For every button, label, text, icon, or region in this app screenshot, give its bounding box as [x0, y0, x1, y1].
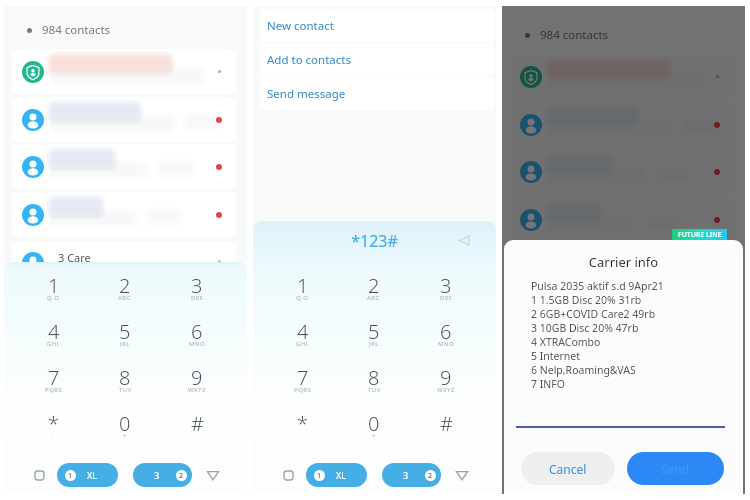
staticText: ·	[301, 432, 304, 440]
staticText: #	[440, 410, 453, 437]
staticText: 8	[119, 364, 131, 391]
button[interactable]: *	[267, 399, 338, 445]
staticText: 2	[368, 272, 380, 299]
button[interactable]: 5	[338, 307, 410, 353]
staticText: DEF	[440, 294, 453, 302]
staticText: 2	[119, 272, 131, 299]
staticText: New contact	[267, 18, 334, 34]
staticText: 7	[48, 364, 60, 391]
staticText: 2	[428, 471, 433, 481]
staticText: *123#	[253, 230, 496, 252]
staticText: 2	[179, 471, 184, 481]
staticText: 0	[119, 410, 131, 437]
button[interactable]	[510, 54, 734, 99]
button[interactable]: 3 Care	[12, 242, 236, 287]
staticText: TUV	[119, 386, 132, 394]
button[interactable]	[510, 197, 734, 242]
staticText: PQRS	[45, 386, 63, 394]
button[interactable]	[12, 49, 236, 94]
button[interactable]: 2	[89, 262, 161, 307]
button[interactable]: Add to contacts	[260, 43, 494, 76]
staticText: 1	[317, 471, 322, 481]
staticText: MNO	[189, 340, 206, 348]
button[interactable]: Send	[627, 452, 724, 485]
staticText: JKL	[120, 340, 130, 348]
staticText: Q O	[47, 294, 60, 302]
button[interactable]: 9	[410, 353, 482, 399]
button[interactable]: 0	[338, 399, 410, 445]
staticText: 9	[440, 364, 452, 391]
button[interactable]: Recent apps	[275, 462, 301, 488]
button[interactable]: 1	[57, 463, 118, 487]
button[interactable]: 9	[161, 353, 233, 399]
staticText: WXYZ	[188, 386, 206, 394]
staticText: 984 contacts	[42, 22, 111, 38]
button[interactable]	[12, 192, 236, 237]
button[interactable]: #	[161, 399, 233, 445]
staticText: +	[123, 432, 127, 440]
button[interactable]: 1	[306, 463, 367, 487]
staticText: 9	[191, 364, 203, 391]
staticText: *	[48, 410, 60, 437]
staticText: 0	[368, 410, 380, 437]
staticText: MNO	[438, 340, 455, 348]
button[interactable]: #	[410, 399, 482, 445]
staticText: Carrier info	[504, 253, 743, 271]
staticText: +	[372, 432, 376, 440]
button[interactable]: 4	[18, 307, 89, 353]
button[interactable]: 3	[133, 463, 192, 487]
staticText: ABC	[367, 294, 381, 302]
staticText: FUTURE LINE	[678, 230, 722, 240]
button[interactable]: 3	[382, 463, 441, 487]
staticText: 4	[297, 318, 309, 345]
button[interactable]	[12, 144, 236, 189]
button[interactable]: 3	[410, 261, 482, 307]
button[interactable]: 0	[89, 399, 161, 445]
staticText: GHI	[296, 340, 309, 348]
button[interactable]: 6	[410, 307, 482, 353]
button[interactable]: Cancel	[521, 452, 615, 485]
button[interactable]	[510, 102, 734, 147]
staticText: 6	[440, 318, 452, 345]
button[interactable]: Back	[200, 462, 226, 488]
staticText: 5 Internet	[531, 349, 581, 363]
button[interactable]: 1	[18, 262, 89, 307]
staticText: 3	[403, 469, 409, 481]
button[interactable]: Backspace	[455, 231, 473, 249]
staticText: ABC	[118, 294, 132, 302]
staticText: 2 6GB+COVID Care2 49rb	[531, 307, 656, 321]
button[interactable]: 8	[338, 353, 410, 399]
staticText: PQRS	[294, 386, 312, 394]
button[interactable]: Send message	[260, 77, 494, 110]
button[interactable]: 5	[89, 307, 161, 353]
staticText: 1	[297, 272, 309, 299]
staticText: ·	[52, 432, 55, 440]
staticText: 6	[191, 318, 203, 345]
staticText: GHI	[47, 340, 60, 348]
button[interactable]: 6	[161, 307, 233, 353]
staticText: 8	[368, 364, 380, 391]
staticText: 6 Nelp,Roaming&VAS	[531, 363, 636, 377]
button[interactable]: 2	[338, 261, 410, 307]
button[interactable]	[12, 97, 236, 142]
button[interactable]: 1	[267, 261, 338, 307]
staticText: Q O	[296, 294, 309, 302]
button[interactable]: 8	[89, 353, 161, 399]
button[interactable]: Recent apps	[26, 462, 52, 488]
staticText: XL	[87, 469, 97, 481]
staticText: 984 contacts	[540, 27, 609, 43]
staticText: Send message	[267, 86, 346, 102]
staticText: 3 10GB Disc 20% 47rb	[531, 321, 639, 335]
button[interactable]: 3	[161, 262, 233, 307]
button[interactable]: 7	[18, 353, 89, 399]
staticText: TUV	[368, 386, 381, 394]
button[interactable]: New contact	[260, 9, 494, 42]
button[interactable]: 7	[267, 353, 338, 399]
button[interactable]: Back	[449, 462, 475, 488]
staticText: #	[191, 410, 204, 437]
staticText: 5	[368, 318, 380, 345]
button[interactable]	[510, 149, 734, 194]
button[interactable]: 4	[267, 307, 338, 353]
staticText: JKL	[369, 340, 379, 348]
button[interactable]: *	[18, 399, 89, 445]
